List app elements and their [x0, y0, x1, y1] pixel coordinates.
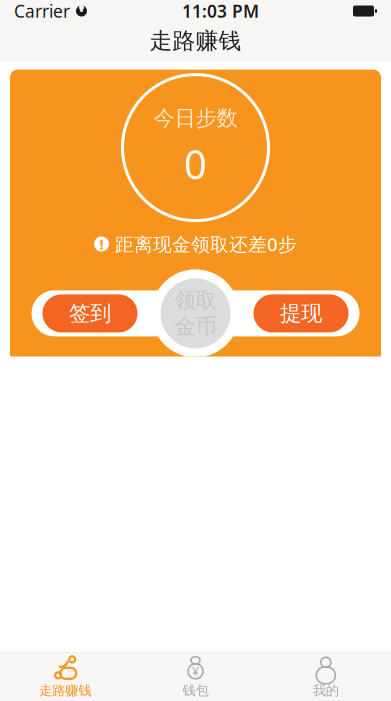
staticText: 11:03 PM	[182, 0, 259, 22]
button[interactable]: 走路赚钱	[0, 653, 130, 701]
staticText: 钱包	[182, 682, 208, 699]
staticText: ¥	[192, 663, 199, 679]
staticText: 金币	[174, 313, 216, 340]
staticText: 领取	[174, 287, 216, 313]
staticText: Carrier	[14, 0, 70, 22]
button[interactable]: ¥	[130, 653, 261, 701]
staticText: 距离现金领取还差0步	[115, 232, 297, 256]
staticText: !	[99, 234, 103, 254]
staticText: 今日步数	[153, 105, 237, 131]
button[interactable]: 提现	[253, 294, 348, 332]
staticText: 走路赚钱	[149, 27, 241, 55]
staticText: 走路赚钱	[39, 682, 91, 699]
button[interactable]: 签到	[42, 294, 137, 332]
staticText: 0	[184, 137, 207, 190]
staticText: 我的	[313, 682, 339, 699]
button[interactable]: 我的	[261, 653, 391, 701]
staticText: 提现	[280, 300, 322, 326]
staticText: 签到	[69, 300, 111, 326]
button[interactable]: 领取	[151, 269, 239, 357]
